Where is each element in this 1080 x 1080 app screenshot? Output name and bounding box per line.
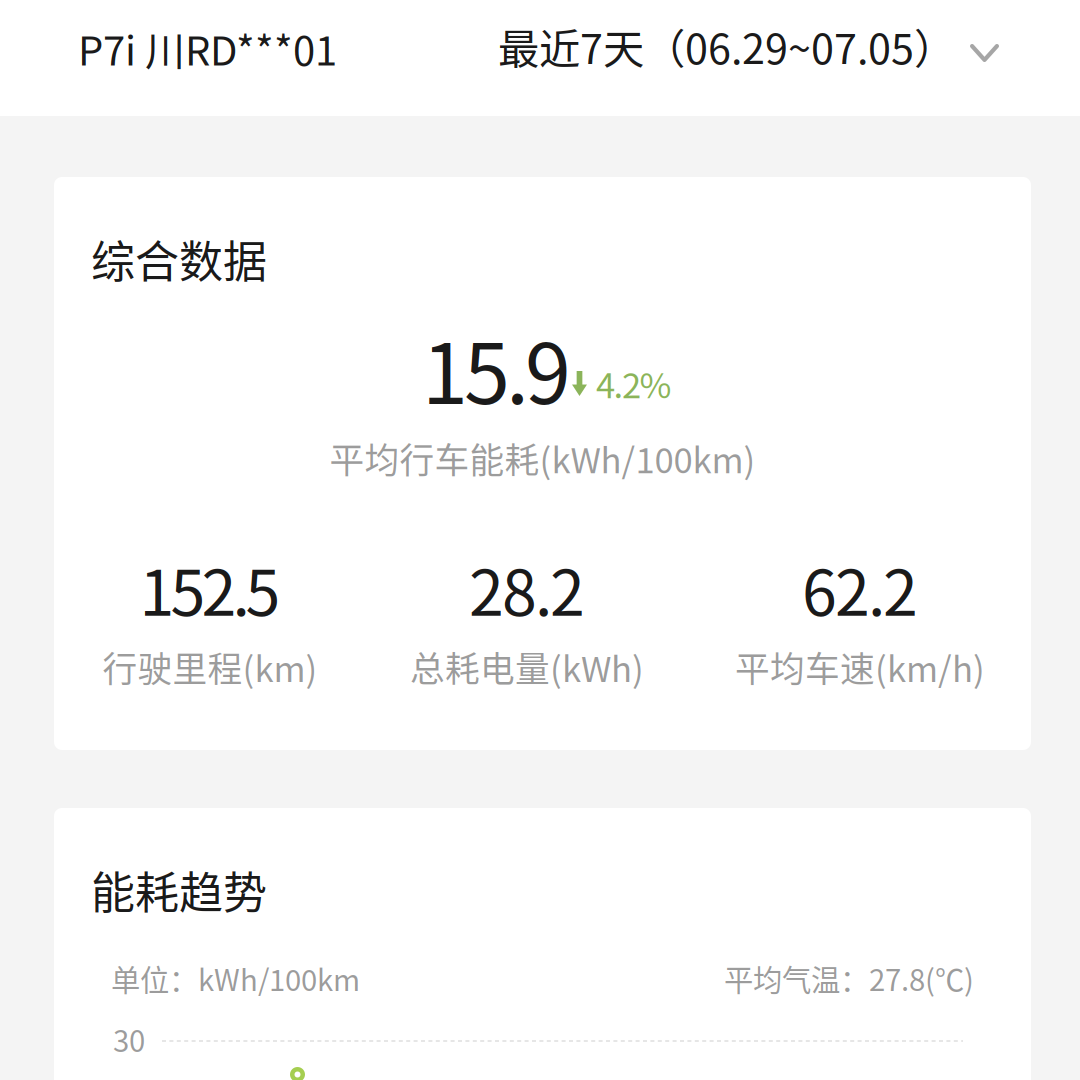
staticText: 单位：kWh/100km bbox=[111, 957, 360, 999]
staticText: P7i 川RD***01 bbox=[78, 19, 337, 77]
staticText: 综合数据 bbox=[91, 227, 267, 291]
staticText: 152.5 bbox=[139, 543, 280, 634]
staticText: 行驶里程(km) bbox=[102, 642, 317, 692]
button[interactable]: P7i 川RD***01 bbox=[78, 19, 378, 77]
staticText: 15.9 bbox=[422, 308, 571, 428]
staticText: 平均行车能耗(kWh/100km) bbox=[329, 433, 755, 483]
staticText: 30 bbox=[113, 1018, 145, 1060]
staticText: 28.2 bbox=[469, 543, 585, 634]
staticText: 平均气温：27.8(℃) bbox=[724, 957, 974, 999]
staticText: 能耗趋势 bbox=[91, 858, 267, 922]
staticText: 平均车速(km/h) bbox=[735, 642, 985, 692]
staticText: 62.2 bbox=[802, 543, 918, 634]
staticText: 4.2% bbox=[596, 358, 671, 408]
staticText: 总耗电量(kWh) bbox=[410, 642, 644, 692]
button[interactable]: 最近7天（06.29~07.05） bbox=[498, 15, 999, 79]
staticText: 最近7天（06.29~07.05） bbox=[498, 16, 955, 76]
